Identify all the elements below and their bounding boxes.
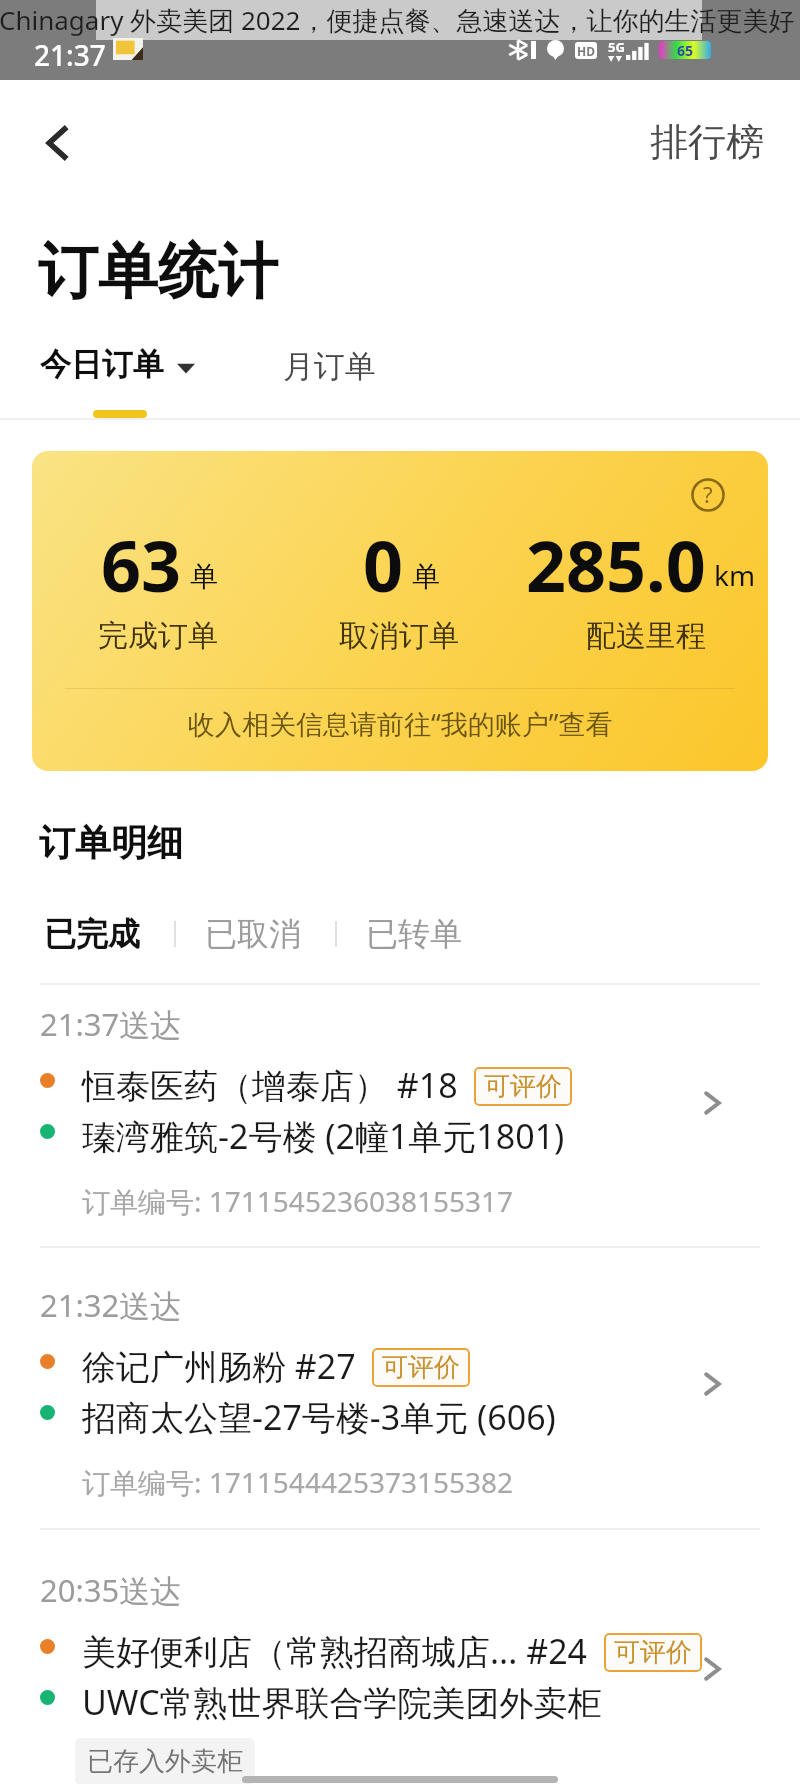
button[interactable]: Open order detail (690, 1362, 734, 1406)
staticText: 单 (190, 559, 218, 594)
button[interactable]: 已完成 (44, 914, 140, 954)
button[interactable]: Open order detail (690, 1647, 734, 1691)
staticText: 21:32送达 (40, 1284, 182, 1326)
button[interactable]: 已转单 (366, 914, 462, 954)
staticText: 21:37 (34, 36, 106, 74)
staticText: 可评价 (484, 1070, 562, 1103)
staticText: 5G (608, 38, 625, 56)
staticText: 285.0 (526, 517, 706, 612)
staticText: HD (577, 43, 595, 59)
staticText: 20:35送达 (40, 1569, 182, 1611)
button[interactable]: 可评价 (382, 1351, 460, 1384)
staticText: 63 (101, 517, 182, 612)
button[interactable]: Open order detail (690, 1081, 734, 1125)
staticText: 单 (412, 559, 440, 594)
staticText: Chinagary 外卖美团 2022，便捷点餐、急速送达，让你的生活更美好 (0, 2, 795, 38)
staticText: ? (703, 479, 713, 509)
staticText: 配送里程 (586, 617, 706, 655)
button[interactable]: 已取消 (205, 914, 301, 954)
staticText: UWC常熟世界联合学院美团外卖柜 (82, 1679, 602, 1725)
staticText: 订单统计 (38, 234, 278, 310)
staticText: 招商太公望-27号楼-3单元 (606) (82, 1394, 556, 1440)
staticText: 0 (363, 517, 404, 612)
staticText: 21:37送达 (40, 1003, 182, 1045)
staticText: 取消订单 (339, 617, 459, 655)
staticText: 可评价 (614, 1636, 692, 1669)
button[interactable]: Help (686, 473, 730, 517)
button[interactable]: Back (28, 114, 86, 172)
staticText: 65 (677, 41, 694, 59)
staticText: 订单编号: 1711544425373155382 (82, 1463, 514, 1501)
button[interactable]: 月订单 (283, 347, 376, 386)
button[interactable]: 可评价 (484, 1070, 562, 1103)
staticText: 徐记广州肠粉 #27 (82, 1343, 356, 1389)
staticText: 已存入外卖柜 (87, 1745, 243, 1778)
button[interactable]: 排行榜 (650, 118, 764, 166)
staticText: km (714, 556, 756, 594)
button[interactable]: Help (32, 451, 768, 771)
staticText: 完成订单 (98, 617, 218, 655)
staticText: 收入相关信息请前往“我的账户”查看 (188, 705, 613, 742)
staticText: 美好便利店（常熟招商城店... #24 (82, 1628, 588, 1674)
button[interactable]: 可评价 (614, 1636, 692, 1669)
staticText: 瑧湾雅筑-2号楼 (2幢1单元1801) (82, 1113, 565, 1159)
button[interactable]: 今日订单 (40, 345, 195, 384)
staticText: 今日订单 (40, 345, 164, 384)
staticText: 可评价 (382, 1351, 460, 1384)
staticText: 恒泰医药（增泰店） #18 (82, 1062, 458, 1108)
staticText: 订单明细 (39, 820, 183, 865)
staticText: 订单编号: 1711545236038155317 (82, 1182, 514, 1220)
